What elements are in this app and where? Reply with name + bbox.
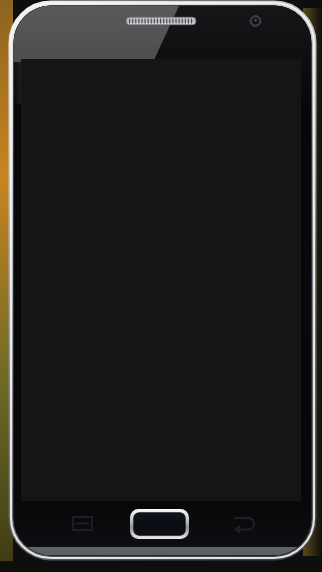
button[interactable]: Home — [130, 509, 189, 539]
button[interactable]: Menu — [60, 506, 106, 542]
button[interactable]: Back — [222, 506, 268, 542]
